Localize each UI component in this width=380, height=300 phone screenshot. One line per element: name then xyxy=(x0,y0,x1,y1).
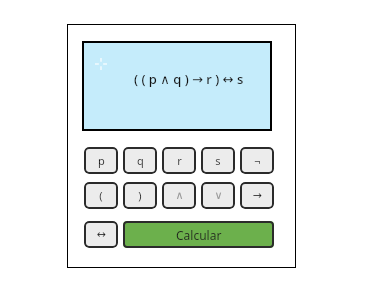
button[interactable]: Biconditional xyxy=(84,221,118,248)
button[interactable]: And xyxy=(162,182,196,209)
staticText: p xyxy=(98,153,105,168)
staticText: ( ( p ∧ q ) → r ) ↔ s xyxy=(134,70,244,88)
button[interactable]: s xyxy=(201,147,235,174)
staticText: ¬ xyxy=(254,153,261,168)
button[interactable]: p xyxy=(84,147,118,174)
button[interactable]: Implies xyxy=(240,182,274,209)
staticText: s xyxy=(215,153,221,168)
button[interactable]: Close parenthesis xyxy=(123,182,157,209)
button[interactable]: q xyxy=(123,147,157,174)
button[interactable]: r xyxy=(162,147,196,174)
staticText: ↔ xyxy=(96,228,106,241)
button[interactable]: Or xyxy=(201,182,235,209)
staticText: Calcular xyxy=(176,227,222,243)
staticText: q xyxy=(137,153,144,168)
button[interactable]: Calcular xyxy=(123,221,274,248)
staticText: r xyxy=(177,153,182,168)
button[interactable]: Open parenthesis xyxy=(84,182,118,209)
staticText: ( xyxy=(99,188,103,203)
button[interactable]: Negation xyxy=(240,147,274,174)
staticText: ∨ xyxy=(214,189,223,202)
staticText: ∧ xyxy=(175,189,184,202)
staticText: ) xyxy=(138,188,142,203)
staticText: → xyxy=(252,189,262,202)
